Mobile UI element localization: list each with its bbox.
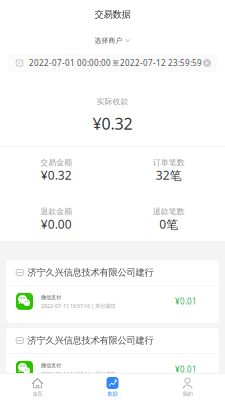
staticText: ¥0.32 (41, 167, 72, 183)
staticText: 微信支付 (41, 362, 61, 369)
staticText: ¥0.01 (175, 364, 197, 375)
staticText: 退款金额 (40, 207, 72, 217)
staticText: ¥0.32 (92, 113, 132, 134)
staticText: 32笔 (156, 167, 182, 183)
staticText: 2022-07-11 16:57:16 | 支付成功 (41, 370, 115, 377)
staticText: 微信支付 (41, 294, 61, 301)
staticText: 0笔 (159, 216, 178, 232)
staticText: 交易数据 (94, 9, 130, 20)
staticText: 交易金额 (40, 158, 72, 168)
button[interactable]: 济宁久兴信息技术有限公司建行 (6, 260, 219, 323)
staticText: ¥0.01 (175, 296, 197, 307)
staticText: 2022-07-11 16:57:16 | 支付成功 (41, 302, 115, 309)
staticText: 至 (112, 59, 119, 67)
staticText: 选择商户 (94, 36, 122, 45)
staticText: 首页 (32, 391, 42, 397)
staticText: 济宁久兴信息技术有限公司建行 (27, 335, 153, 346)
button[interactable]: 济宁久兴信息技术有限公司建行 (6, 328, 219, 391)
button[interactable]: 选择商户 (84, 20, 140, 45)
staticText: 数据 (107, 391, 117, 397)
staticText: 2022-07-12 23:59:59 (120, 58, 202, 68)
staticText: 订单笔数 (153, 158, 185, 168)
button[interactable]: 首页 (0, 377, 75, 397)
button[interactable]: 我的 (150, 377, 225, 397)
staticText: 实际收款 (96, 97, 128, 106)
button[interactable]: 数据 (75, 377, 150, 397)
staticText: 我的 (182, 391, 192, 397)
staticText: 2022-07-01 00:00:00 (29, 58, 111, 68)
button[interactable]: 2022-07-01 00:00:00 (8, 45, 217, 72)
staticText: ¥0.00 (41, 216, 72, 232)
staticText: 退款笔数 (153, 207, 185, 217)
staticText: 济宁久兴信息技术有限公司建行 (27, 267, 153, 278)
